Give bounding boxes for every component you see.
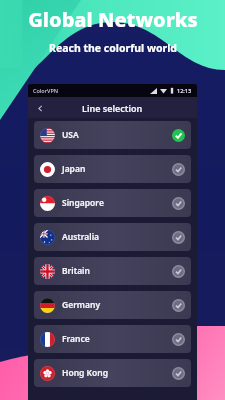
button[interactable]: Japan xyxy=(34,155,191,183)
staticText: USA xyxy=(62,129,79,141)
staticText: Britain xyxy=(62,265,90,277)
button[interactable]: Back xyxy=(31,99,49,117)
staticText: Line selection xyxy=(82,102,143,114)
staticText: 12:13 xyxy=(177,87,192,94)
button[interactable]: Hong Kong xyxy=(34,359,191,387)
staticText: Australia xyxy=(62,231,100,243)
staticText: ColorVPN xyxy=(33,87,59,94)
button[interactable]: Singapore xyxy=(34,189,191,217)
button[interactable]: Britain xyxy=(34,257,191,285)
staticText: Japan xyxy=(62,163,86,175)
button[interactable]: Germany xyxy=(34,291,191,319)
button[interactable]: USA xyxy=(34,121,191,149)
staticText: Singapore xyxy=(62,197,104,209)
staticText: Reach the colorful world xyxy=(49,41,177,55)
staticText: Hong Kong xyxy=(62,367,109,379)
staticText: France xyxy=(62,333,90,345)
button[interactable]: France xyxy=(34,325,191,353)
button[interactable]: Australia xyxy=(34,223,191,251)
staticText: Global Networks xyxy=(28,6,198,33)
staticText: Germany xyxy=(62,299,101,311)
